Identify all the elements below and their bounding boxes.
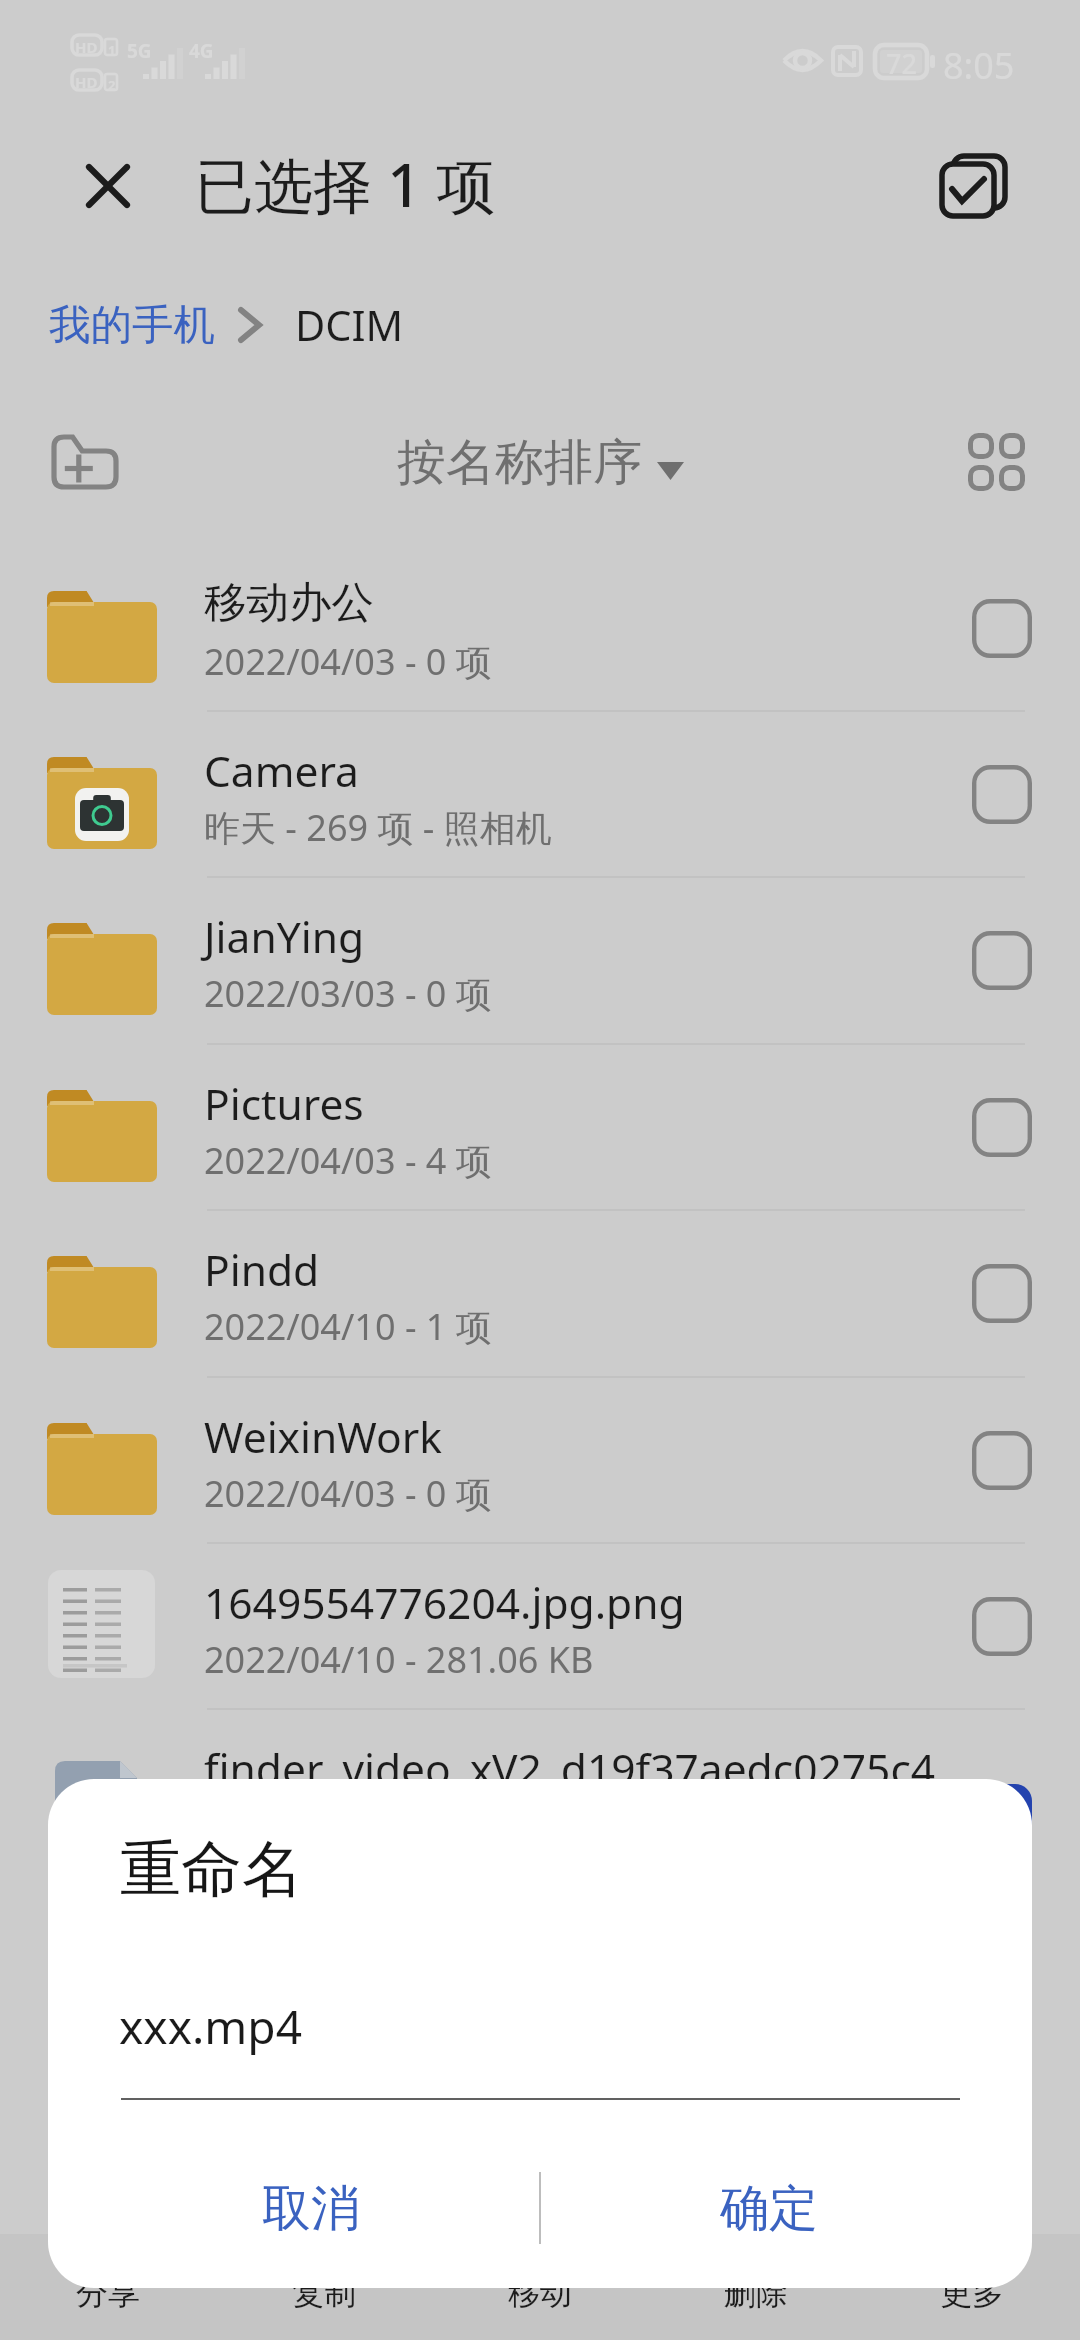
staticText: 8:05 (943, 41, 1015, 90)
button[interactable]: Select item (954, 1377, 1050, 1543)
button[interactable]: JianYing (0, 877, 1080, 1043)
staticText: 我的手机 (49, 299, 215, 351)
button[interactable]: 1649554776204.jpg.png (0, 1543, 1080, 1709)
button[interactable]: 更多 (864, 2234, 1080, 2340)
staticText: Pindd (204, 1241, 320, 1299)
button[interactable]: 按名称排序 (397, 432, 688, 494)
staticText: JianYing (204, 908, 365, 966)
button[interactable]: Select item (954, 1044, 1050, 1210)
button[interactable]: 复制 (216, 2234, 432, 2340)
staticText: 复制 (292, 2273, 356, 2313)
staticText: HD (75, 72, 98, 92)
button[interactable]: 我的手机 (49, 299, 215, 351)
staticText: 4G (189, 38, 214, 64)
button[interactable]: 移动办公 (0, 545, 1080, 711)
button[interactable]: Select item (954, 1210, 1050, 1376)
staticText: Camera (204, 742, 359, 800)
staticText: 1 (108, 41, 116, 59)
button[interactable]: WeixinWork (0, 1377, 1080, 1543)
staticText: 分享 (76, 2273, 140, 2313)
staticText: 5G (127, 38, 152, 64)
button[interactable]: Select item (954, 877, 1050, 1043)
staticText: 按名称排序 (397, 432, 642, 494)
button[interactable]: 确定 (533, 2149, 1005, 2269)
staticText: 2022/04/10 - 281.06 KB (204, 1635, 594, 1684)
button[interactable]: Pictures (0, 1044, 1080, 1210)
staticText: 2022/04/03 - 4 项 (204, 1136, 492, 1185)
button[interactable]: Pindd (0, 1210, 1080, 1376)
button[interactable]: Grid view (946, 412, 1046, 512)
staticText: 2022/04/03 - 0 项 (204, 637, 492, 686)
staticText: Pictures (204, 1075, 364, 1133)
staticText: 1649554776204.jpg.png (204, 1574, 685, 1632)
button[interactable]: 分享 (0, 2234, 216, 2340)
button[interactable]: New folder (30, 408, 138, 516)
staticText: 2022/04/10 - 5.26 MB (204, 1801, 563, 1850)
staticText: 移动 (508, 2273, 572, 2313)
button[interactable]: Select item (954, 1543, 1050, 1709)
staticText: 已选择 1 项 (195, 144, 496, 225)
staticText: HD (75, 37, 98, 57)
button[interactable]: Select item (954, 1709, 1050, 1875)
staticText: DCIM (295, 297, 404, 354)
staticText: 昨天 - 269 项 - 照相机 (204, 803, 552, 852)
button[interactable]: Close (62, 140, 154, 232)
staticText: 2022/04/10 - 1 项 (204, 1302, 492, 1351)
button[interactable]: finder_video_xV2_d19f37aedc0275c4 (0, 1709, 1080, 1875)
staticText: 2022/04/03 - 0 项 (204, 1469, 492, 1518)
staticText: 确定 (720, 2178, 818, 2240)
staticText: finder_video_xV2_d19f37aedc0275c4 (204, 1740, 936, 1798)
staticText: 2022/03/03 - 0 项 (204, 969, 492, 1018)
staticText: 2 (108, 76, 116, 94)
staticText: 更多 (940, 2273, 1004, 2313)
staticText: 72 (886, 45, 917, 82)
button[interactable]: Select all (930, 152, 1014, 236)
button[interactable]: Camera (0, 711, 1080, 877)
button[interactable]: 移动 (432, 2234, 648, 2340)
button[interactable]: 删除 (648, 2234, 864, 2340)
staticText: 移动办公 (204, 576, 374, 630)
staticText: xxx.mp4 (119, 1995, 302, 2058)
button[interactable]: 取消 (75, 2149, 547, 2269)
staticText: 删除 (724, 2273, 788, 2313)
staticText: 重命名 (120, 1831, 303, 1908)
staticText: WeixinWork (204, 1408, 442, 1466)
button[interactable]: Select item (954, 711, 1050, 877)
button[interactable]: Select item (954, 545, 1050, 711)
staticText: 取消 (262, 2178, 360, 2240)
